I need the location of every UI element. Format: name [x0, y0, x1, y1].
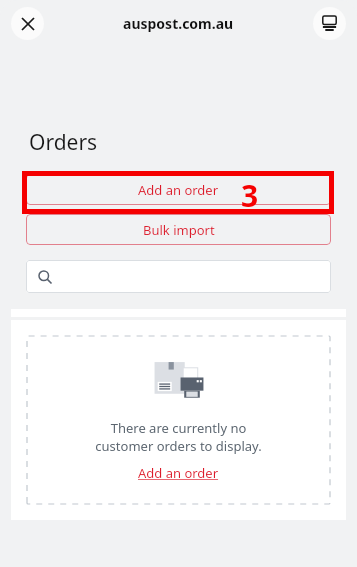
- staticText: Add an order: [138, 181, 219, 199]
- button[interactable]: Search orders: [26, 260, 331, 293]
- staticText: 3: [241, 175, 259, 216]
- button[interactable]: Close: [11, 7, 44, 40]
- button[interactable]: Add an order: [138, 464, 219, 482]
- staticText: Bulk import: [143, 221, 215, 239]
- button[interactable]: Add an order: [26, 174, 331, 205]
- staticText: There are currently no customer orders t…: [95, 419, 262, 455]
- staticText: auspost.com.au: [123, 14, 234, 33]
- staticText: Orders: [29, 128, 98, 157]
- staticText: Add an order: [138, 464, 219, 482]
- button[interactable]: Request desktop site: [313, 7, 346, 40]
- button[interactable]: Bulk import: [26, 214, 331, 245]
